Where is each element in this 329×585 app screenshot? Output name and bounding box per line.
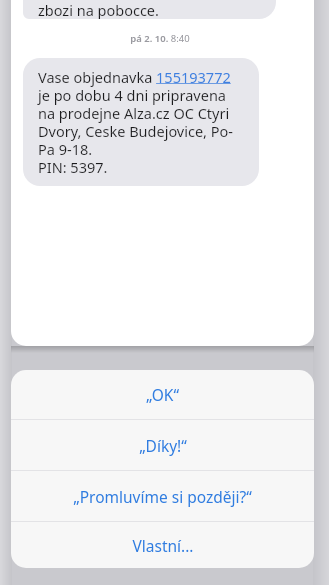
staticText: „Promluvíme si později?“ [73, 486, 252, 507]
button[interactable]: „Díky!“ [11, 420, 314, 470]
staticText: pá 2. 10. 8:40 [130, 32, 190, 45]
staticText: Vlastní... [132, 535, 194, 556]
staticText: „Díky!“ [139, 435, 187, 456]
button[interactable]: Vlastní... [11, 522, 314, 568]
staticText: Vase objednavka 155193772 je po dobu 4 d… [38, 67, 244, 177]
staticText: „OK“ [146, 384, 179, 405]
button[interactable]: „Promluvíme si později?“ [11, 471, 314, 521]
button[interactable]: zbozi na pobocce. [23, 0, 276, 19]
button[interactable]: „OK“ [11, 370, 314, 419]
staticText: zbozi na pobocce. [38, 0, 159, 19]
button[interactable]: Vase objednavka 155193772 je po dobu 4 d… [23, 58, 259, 186]
